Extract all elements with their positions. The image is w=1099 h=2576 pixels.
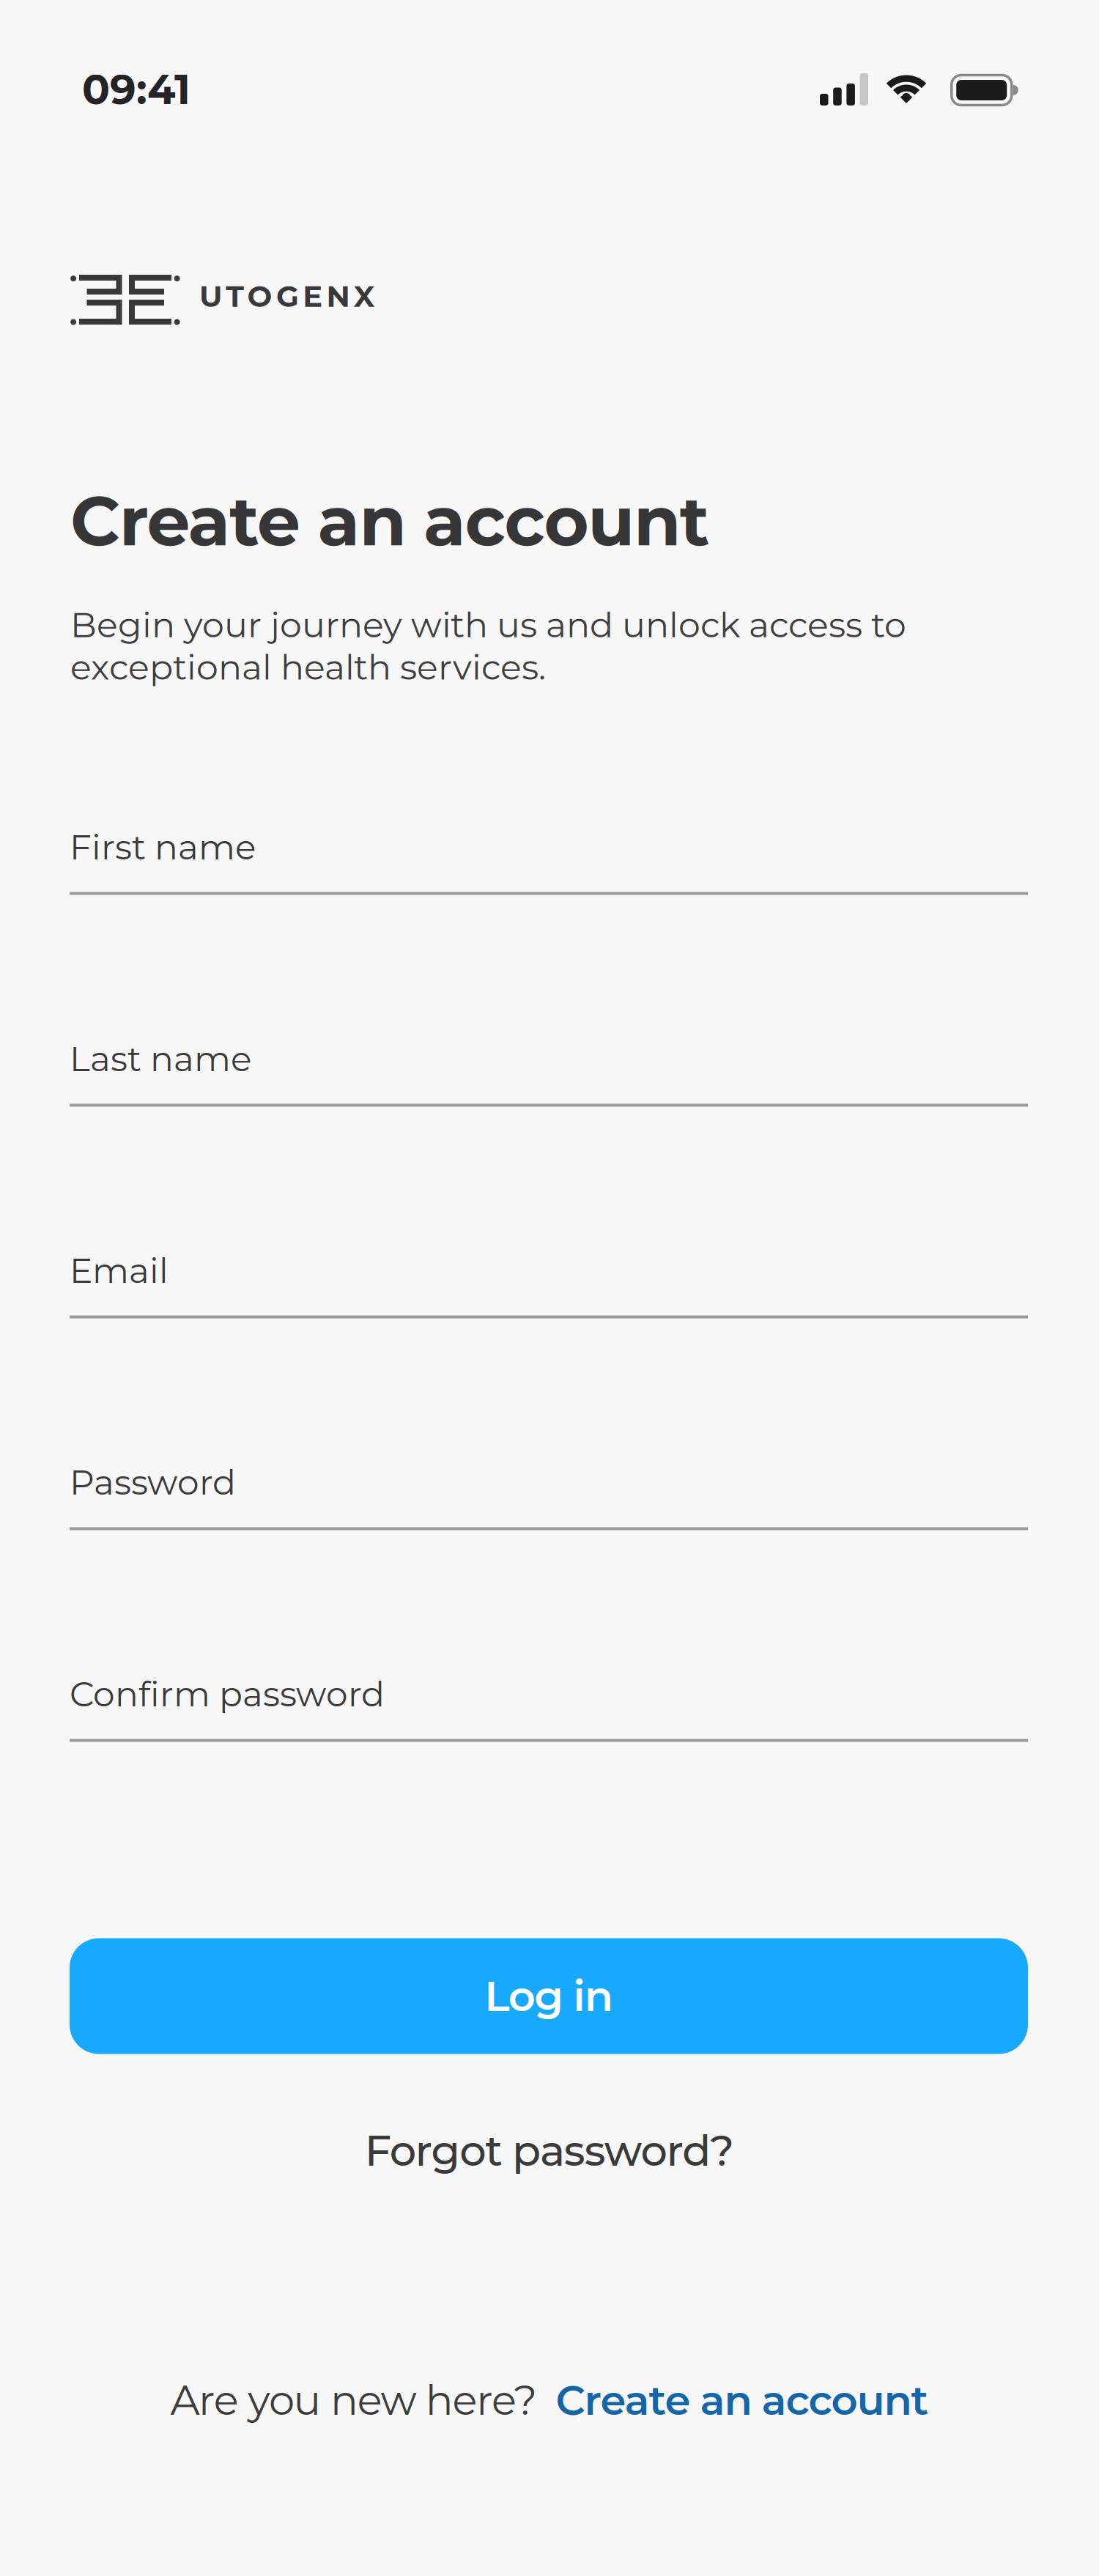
staticText: Email xyxy=(70,1250,169,1292)
staticText: Create an account xyxy=(70,479,710,563)
staticText: Create an account xyxy=(556,2375,929,2425)
button[interactable]: First name xyxy=(70,826,1028,895)
staticText: 09:41 xyxy=(82,64,190,114)
button[interactable]: Last name xyxy=(70,1038,1028,1107)
button[interactable]: Forgot password? xyxy=(365,2125,734,2176)
button[interactable]: Confirm password xyxy=(70,1673,1028,1742)
staticText: Confirm password xyxy=(70,1673,385,1715)
staticText: First name xyxy=(70,826,256,868)
staticText: Are you new here? xyxy=(170,2375,537,2425)
staticText: UTOGENX xyxy=(199,278,375,314)
staticText: Log in xyxy=(484,1971,613,2022)
button[interactable]: Log in xyxy=(70,1938,1028,2054)
staticText: Last name xyxy=(70,1038,251,1080)
staticText: Forgot password? xyxy=(365,2125,734,2176)
button[interactable]: Email xyxy=(70,1250,1028,1318)
button[interactable]: Create an account xyxy=(537,2375,929,2425)
button[interactable]: Password xyxy=(70,1461,1028,1530)
staticText: Password xyxy=(70,1461,236,1503)
staticText: Begin your journey with us and unlock ac… xyxy=(70,604,906,688)
